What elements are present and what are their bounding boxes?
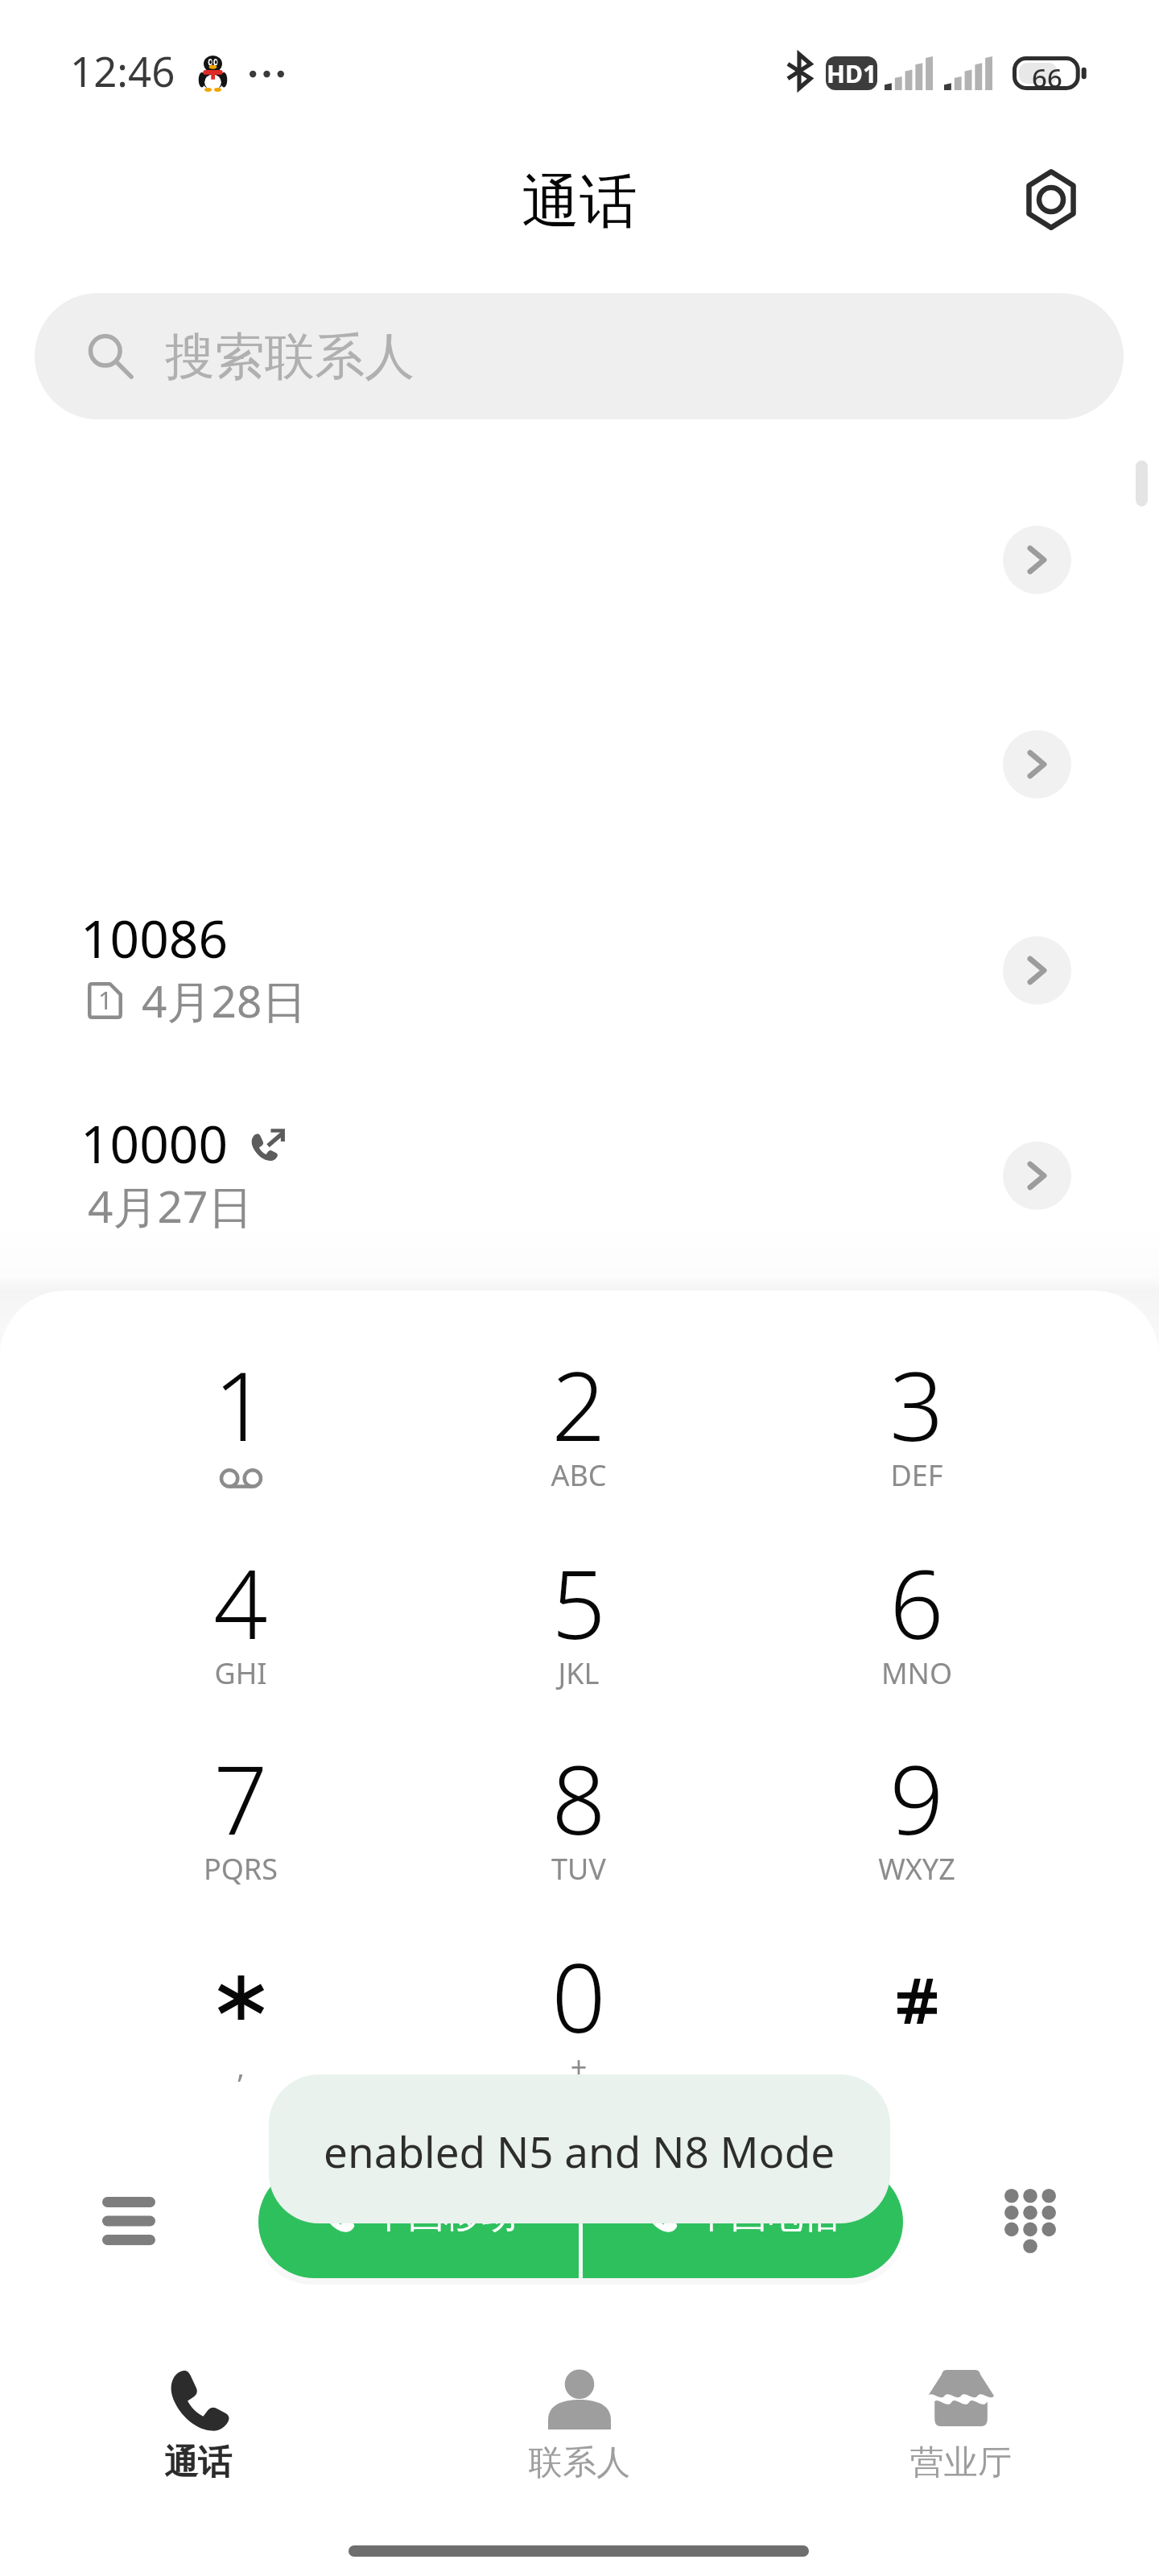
button[interactable]: 中国移动 (258, 2165, 580, 2278)
button[interactable]: 5 (434, 1517, 724, 1710)
staticText: 通话 (7, 2442, 389, 2484)
staticText: TUV (434, 1849, 724, 1889)
staticText: + (434, 2047, 724, 2087)
button[interactable]: 搜索联系人 (35, 293, 1124, 419)
staticText: 7 (96, 1733, 386, 1863)
button[interactable]: Star key (96, 1910, 386, 2103)
staticText: 12:46 (70, 43, 175, 98)
button[interactable]: 2 (434, 1319, 724, 1512)
button[interactable]: Open call details (1003, 730, 1071, 799)
button[interactable]: 3 (772, 1319, 1062, 1512)
staticText: JKL (434, 1653, 724, 1693)
button[interactable]: 联系人 (389, 2334, 770, 2504)
staticText: 3 (772, 1340, 1062, 1469)
staticText: DEF (772, 1455, 1062, 1495)
staticText: 5 (434, 1538, 724, 1667)
button[interactable]: 6 (772, 1517, 1062, 1710)
button[interactable]: 10086 (0, 868, 1159, 1072)
button[interactable]: 4 (96, 1517, 386, 1710)
staticText: 0 (434, 1931, 724, 2061)
staticText: 搜索联系人 (165, 325, 415, 388)
staticText: 66 (1032, 60, 1062, 96)
button[interactable]: Pound key (772, 1910, 1062, 2103)
staticText: 通话 (0, 166, 1159, 239)
staticText: 8 (434, 1733, 724, 1863)
button[interactable]: Open call details (1003, 936, 1071, 1005)
staticText: 营业厅 (770, 2442, 1152, 2484)
staticText: GHI (96, 1653, 386, 1693)
staticText: 1 (96, 1340, 386, 1469)
staticText: ABC (434, 1455, 724, 1495)
button[interactable]: 中国电信 (580, 2165, 903, 2278)
staticText: 10086 (80, 903, 229, 973)
staticText: enabled N5 and N8 Mode (324, 2122, 835, 2180)
button[interactable]: Open call details (1003, 1141, 1071, 1210)
staticText: 联系人 (389, 2442, 770, 2484)
button[interactable]: 通话 (7, 2334, 389, 2504)
button[interactable]: 7 (96, 1712, 386, 1905)
staticText: 4 (96, 1538, 386, 1667)
button[interactable]: Settings (1013, 161, 1090, 238)
staticText: 1 (98, 983, 113, 1017)
button[interactable]: 9 (772, 1712, 1062, 1905)
staticText: 6 (772, 1538, 1062, 1667)
staticText: HD1 (827, 57, 877, 90)
staticText: 2 (434, 1340, 724, 1469)
button[interactable]: 10000 (0, 1073, 1159, 1278)
staticText: 4月27日 (88, 1175, 253, 1236)
button[interactable]: 0 (434, 1910, 724, 2103)
staticText: 9 (772, 1733, 1062, 1863)
staticText: WXYZ (772, 1849, 1062, 1889)
button[interactable]: Open call details (1003, 526, 1071, 594)
staticText: 中国电信 (695, 2193, 839, 2239)
button[interactable]: Open call details (0, 457, 1159, 662)
staticText: 中国移动 (372, 2193, 517, 2239)
button[interactable]: More options (64, 2165, 193, 2278)
button[interactable]: 营业厅 (770, 2334, 1152, 2504)
button[interactable]: Dialpad (966, 2165, 1095, 2278)
button[interactable]: Open call details (0, 662, 1159, 866)
staticText: PQRS (96, 1849, 386, 1889)
staticText: MNO (772, 1653, 1062, 1693)
button[interactable]: 1 (96, 1319, 386, 1512)
staticText: , (96, 2047, 386, 2087)
button[interactable]: 8 (434, 1712, 724, 1905)
staticText: 10000 (80, 1108, 229, 1179)
staticText: 4月28日 (142, 970, 307, 1030)
